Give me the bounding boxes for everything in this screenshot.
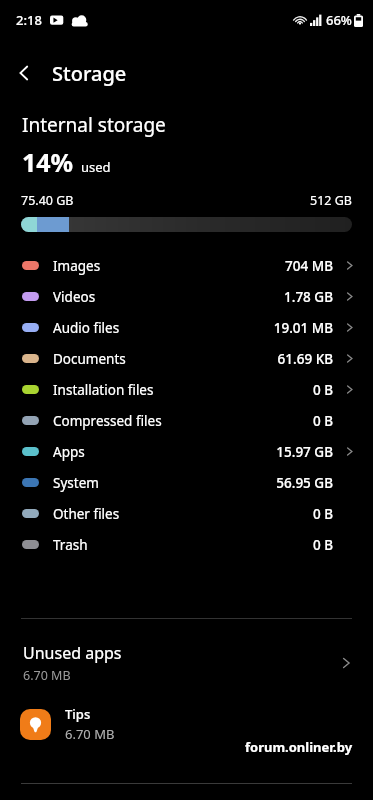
- staticText: Images: [53, 257, 101, 275]
- staticText: Trash: [53, 536, 88, 554]
- staticText: 704 MB: [285, 257, 333, 275]
- staticText: 512 GB: [310, 192, 352, 209]
- staticText: System: [53, 474, 99, 492]
- staticText: 66%: [326, 11, 352, 29]
- staticText: Tips: [65, 705, 91, 723]
- button[interactable]: Audio files: [0, 312, 373, 343]
- staticText: Unused apps: [23, 642, 122, 664]
- staticText: 15.97 GB: [276, 443, 333, 461]
- button[interactable]: Compressed files: [0, 405, 373, 436]
- staticText: 1.78 GB: [284, 288, 333, 306]
- staticText: Videos: [53, 288, 96, 306]
- button[interactable]: Tips: [0, 700, 373, 748]
- staticText: 19.01 MB: [273, 319, 333, 337]
- staticText: 75.40 GB: [21, 192, 74, 209]
- staticText: 0 B: [312, 536, 333, 554]
- staticText: Internal storage: [22, 112, 166, 138]
- staticText: Installation files: [53, 381, 154, 399]
- button[interactable]: Installation files: [0, 374, 373, 405]
- staticText: 56.95 GB: [276, 474, 333, 492]
- staticText: used: [81, 158, 111, 176]
- button[interactable]: Documents: [0, 343, 373, 374]
- staticText: forum.onliner.by: [245, 738, 353, 756]
- staticText: 6.70 MB: [23, 667, 71, 684]
- staticText: Compressed files: [53, 412, 162, 430]
- button[interactable]: Images: [0, 250, 373, 281]
- button[interactable]: Unused apps: [0, 634, 373, 692]
- staticText: 0 B: [312, 412, 333, 430]
- staticText: Documents: [53, 350, 126, 368]
- button[interactable]: Videos: [0, 281, 373, 312]
- staticText: 0 B: [312, 505, 333, 523]
- staticText: 0 B: [312, 381, 333, 399]
- staticText: Audio files: [53, 319, 120, 337]
- staticText: 61.69 KB: [277, 350, 333, 368]
- staticText: Apps: [53, 443, 85, 461]
- staticText: Storage: [52, 60, 127, 87]
- button[interactable]: Apps: [0, 436, 373, 467]
- button[interactable]: System: [0, 467, 373, 498]
- button[interactable]: Back: [0, 49, 48, 97]
- staticText: 14%: [22, 145, 74, 179]
- staticText: Other files: [53, 505, 120, 523]
- staticText: 2:18: [16, 11, 42, 29]
- button[interactable]: Other files: [0, 498, 373, 529]
- button[interactable]: Trash: [0, 529, 373, 560]
- staticText: 6.70 MB: [65, 725, 115, 743]
